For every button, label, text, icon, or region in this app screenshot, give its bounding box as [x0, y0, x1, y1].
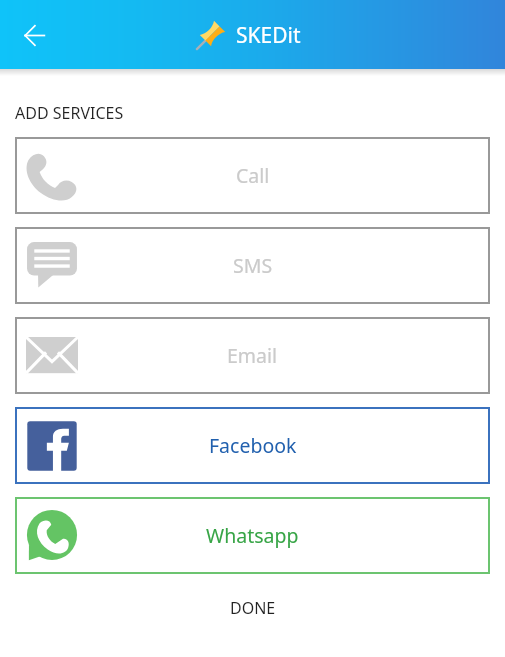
staticText: SMS: [233, 252, 273, 279]
button[interactable]: SMS: [15, 227, 490, 304]
button[interactable]: Email: [15, 317, 490, 394]
staticText: ADD SERVICES: [15, 102, 124, 124]
button[interactable]: DONE: [206, 592, 300, 624]
button[interactable]: Back: [10, 11, 58, 59]
staticText: DONE: [230, 597, 276, 619]
button[interactable]: Facebook: [15, 407, 490, 484]
staticText: Facebook: [209, 432, 297, 459]
staticText: Whatsapp: [206, 522, 299, 549]
button[interactable]: Call: [15, 137, 490, 214]
staticText: SKEDit: [236, 21, 301, 50]
staticText: Email: [227, 342, 278, 369]
button[interactable]: Whatsapp: [15, 497, 490, 574]
staticText: Call: [236, 162, 270, 189]
